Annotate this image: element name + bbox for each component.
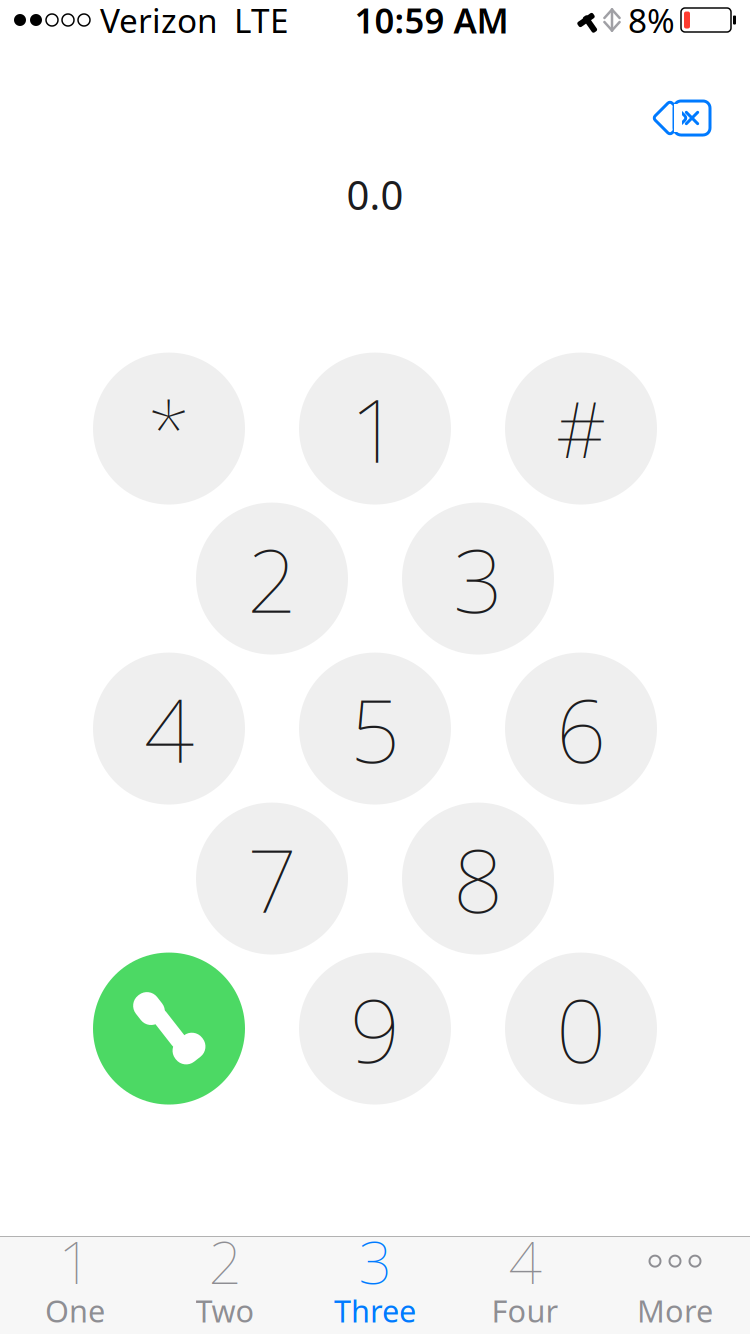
staticText: Two: [195, 1290, 254, 1331]
button[interactable]: 5: [299, 653, 451, 805]
staticText: 4: [508, 1222, 541, 1300]
staticText: 3: [453, 520, 503, 637]
button[interactable]: Delete: [644, 86, 724, 150]
staticText: More: [637, 1290, 713, 1331]
staticText: 9: [350, 970, 400, 1087]
staticText: 5: [350, 670, 400, 787]
button[interactable]: 6: [505, 653, 657, 805]
button[interactable]: 3: [402, 503, 554, 655]
button[interactable]: 3: [300, 1230, 450, 1334]
button[interactable]: Call: [93, 953, 245, 1105]
staticText: Verizon: [100, 0, 218, 42]
button[interactable]: 2: [150, 1230, 300, 1334]
staticText: 4: [144, 670, 194, 787]
button[interactable]: 4: [93, 653, 245, 805]
staticText: 0.0: [346, 168, 403, 221]
button[interactable]: 9: [299, 953, 451, 1105]
button[interactable]: 0: [505, 953, 657, 1105]
staticText: #: [556, 377, 606, 480]
staticText: 2: [208, 1222, 241, 1300]
staticText: Four: [491, 1290, 558, 1331]
staticText: 8: [453, 820, 503, 937]
staticText: 1: [350, 370, 400, 487]
staticText: LTE: [234, 0, 289, 42]
staticText: 1: [58, 1222, 91, 1300]
staticText: 6: [556, 670, 606, 787]
staticText: 2: [247, 520, 297, 637]
staticText: *: [147, 377, 190, 480]
button[interactable]: 1: [299, 353, 451, 505]
staticText: 0: [556, 970, 606, 1087]
button[interactable]: 4: [450, 1230, 600, 1334]
button[interactable]: #: [505, 353, 657, 505]
staticText: One: [45, 1290, 105, 1331]
button[interactable]: 2: [196, 503, 348, 655]
staticText: 8%: [628, 0, 675, 42]
button[interactable]: 1: [0, 1230, 150, 1334]
staticText: 10:59 AM: [354, 0, 508, 43]
button[interactable]: 7: [196, 803, 348, 955]
button[interactable]: *: [93, 353, 245, 505]
staticText: Three: [334, 1290, 416, 1331]
button[interactable]: 8: [402, 803, 554, 955]
button[interactable]: More: [600, 1230, 750, 1334]
staticText: 7: [247, 820, 297, 937]
staticText: 3: [358, 1222, 391, 1300]
